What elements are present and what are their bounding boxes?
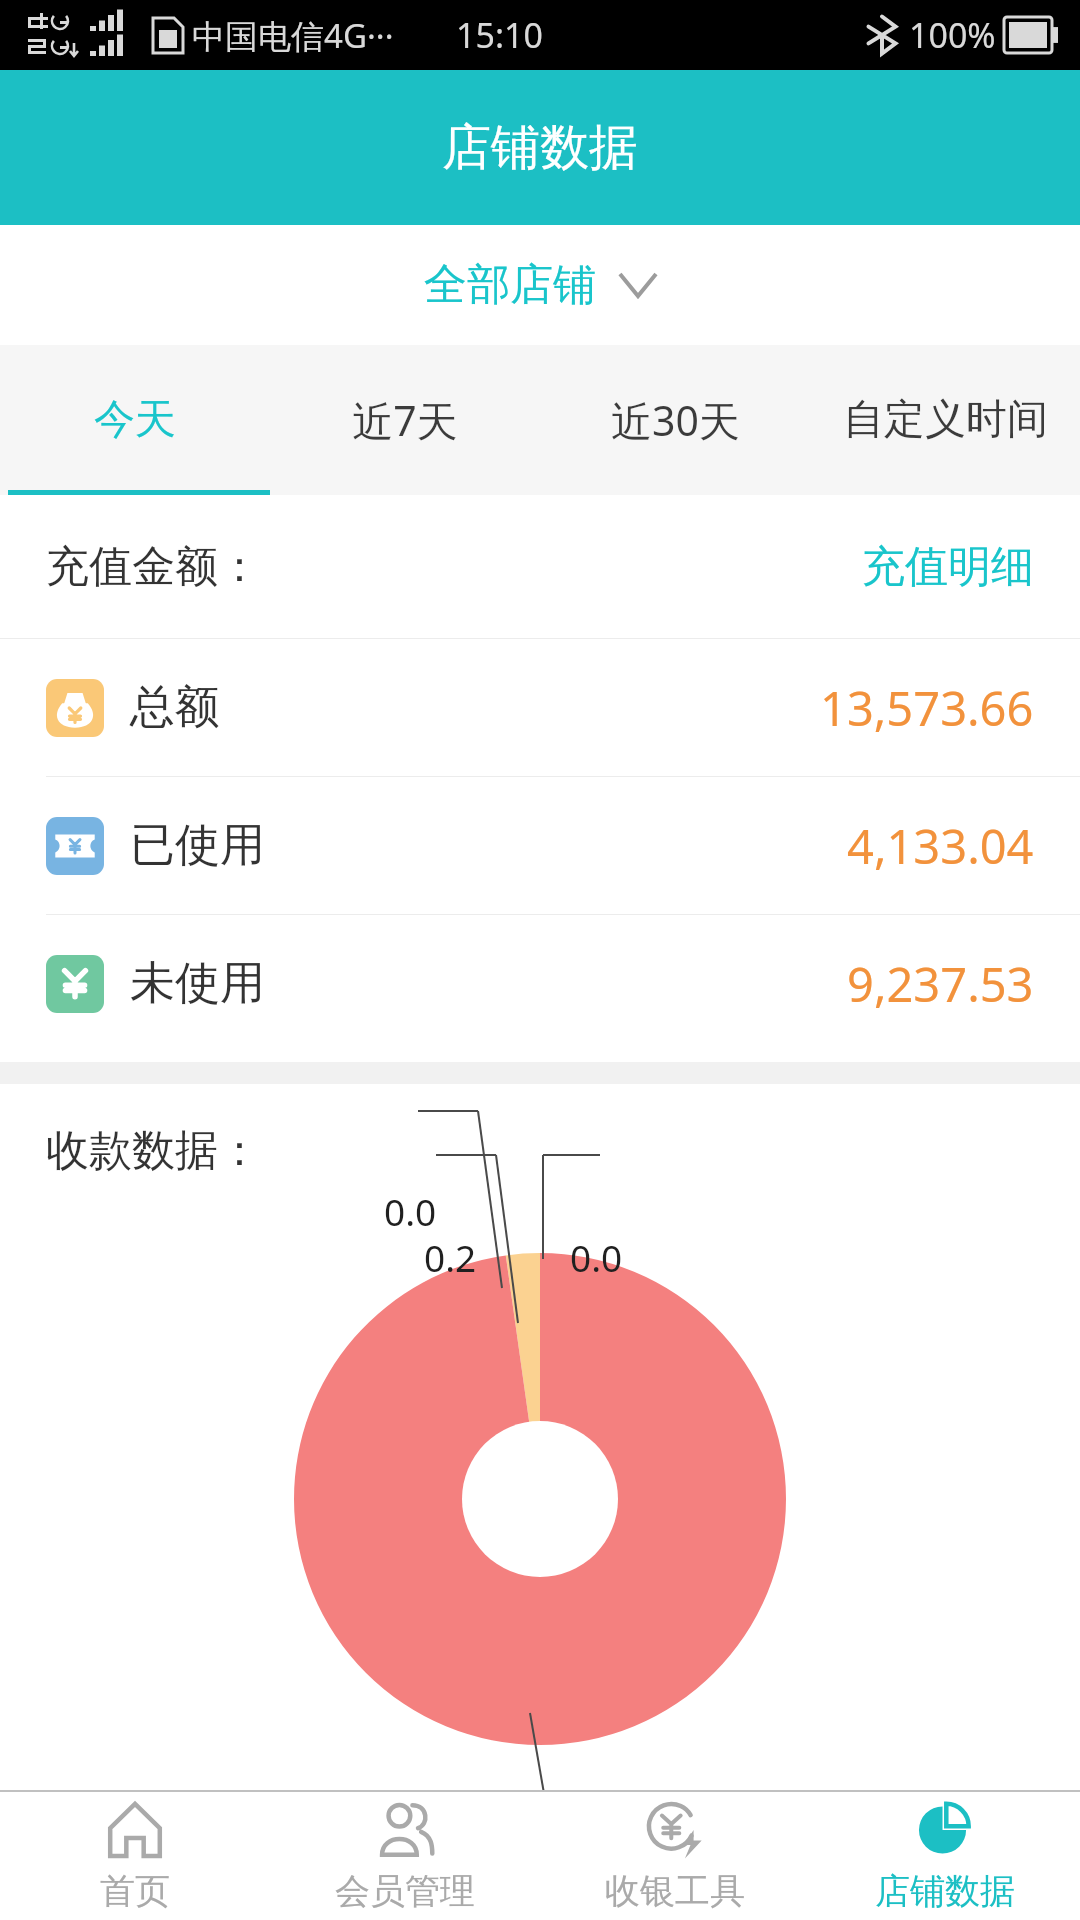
- staticText: 中国电信4G: [192, 13, 367, 58]
- button[interactable]: 未使用: [0, 915, 1080, 1052]
- staticText: 首页: [100, 1869, 170, 1913]
- button[interactable]: 自定义时间: [810, 345, 1080, 495]
- staticText: 今天: [94, 394, 176, 446]
- staticText: 0.0: [384, 1186, 437, 1236]
- staticText: 100%: [909, 12, 996, 58]
- button[interactable]: 全部店铺: [394, 244, 686, 326]
- button[interactable]: 今天: [0, 345, 270, 495]
- button[interactable]: 店铺数据: [810, 1792, 1080, 1920]
- button[interactable]: 首页: [0, 1792, 270, 1920]
- staticText: 全部店铺: [424, 258, 596, 312]
- button[interactable]: 近30天: [540, 345, 810, 495]
- button[interactable]: 已使用: [0, 777, 1080, 914]
- staticText: 充值明细: [862, 540, 1034, 594]
- staticText: 会员管理: [335, 1869, 475, 1913]
- staticText: ···: [367, 13, 394, 58]
- staticText: 9,237.53: [847, 952, 1034, 1016]
- staticText: 总额: [130, 679, 220, 736]
- button[interactable]: 收银工具: [540, 1792, 810, 1920]
- staticText: 自定义时间: [843, 394, 1048, 446]
- button[interactable]: 总额: [0, 639, 1080, 776]
- staticText: 未使用: [130, 955, 265, 1012]
- button[interactable]: 充值明细: [854, 532, 1042, 602]
- staticText: 近30天: [611, 392, 740, 448]
- staticText: 0.0: [570, 1232, 623, 1282]
- button[interactable]: 近7天: [270, 345, 540, 495]
- staticText: 收银工具: [605, 1869, 745, 1913]
- staticText: 15:10: [456, 12, 543, 58]
- staticText: 收款数据：: [46, 1124, 261, 1178]
- staticText: 店铺数据: [875, 1869, 1015, 1913]
- staticText: 店铺数据: [442, 117, 638, 179]
- staticText: 已使用: [130, 817, 265, 874]
- staticText: 0.2: [424, 1232, 477, 1282]
- staticText: 充值金额：: [46, 540, 261, 594]
- staticText: 4,133.04: [847, 814, 1034, 878]
- button[interactable]: 会员管理: [270, 1792, 540, 1920]
- staticText: 13,573.66: [820, 676, 1034, 740]
- staticText: 近7天: [352, 392, 458, 448]
